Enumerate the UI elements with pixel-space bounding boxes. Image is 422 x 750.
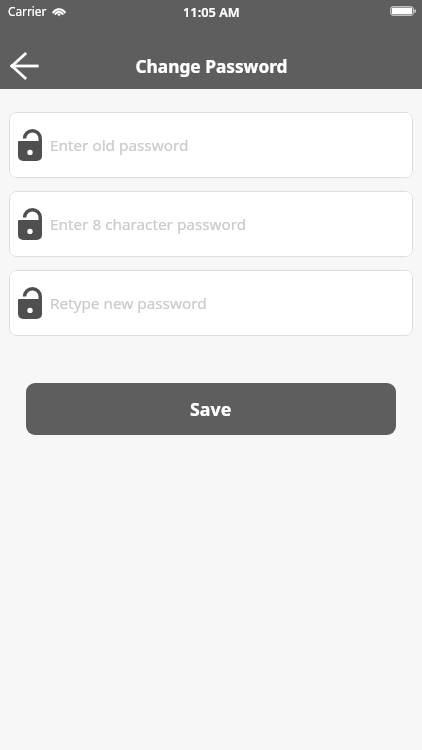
button[interactable]: Enter 8 character password <box>9 191 413 257</box>
staticText: Change Password <box>135 55 288 79</box>
button[interactable]: Retype new password <box>9 270 413 336</box>
staticText: Enter 8 character password <box>50 214 247 235</box>
button[interactable]: Back <box>0 44 50 89</box>
staticText: Carrier <box>8 3 47 19</box>
button[interactable]: Enter old password <box>9 112 413 178</box>
button[interactable]: Save <box>26 383 396 435</box>
staticText: Save <box>190 397 232 421</box>
staticText: Enter old password <box>50 135 189 156</box>
staticText: Retype new password <box>50 293 207 314</box>
staticText: 11:05 AM <box>183 3 240 20</box>
